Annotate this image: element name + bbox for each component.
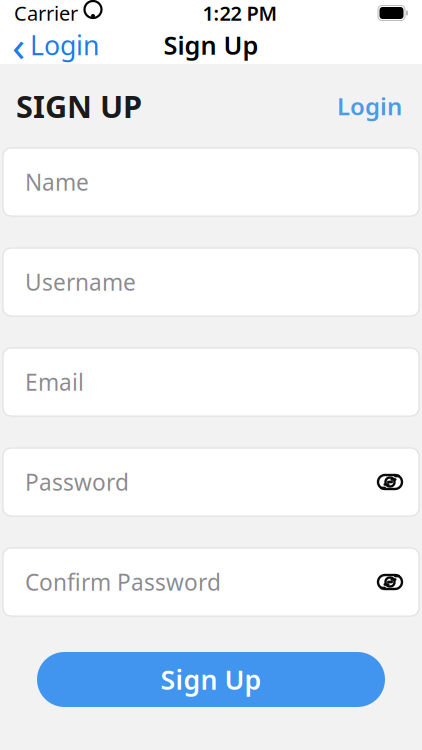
staticText: Login	[337, 90, 402, 122]
staticText: Password	[25, 467, 129, 497]
button[interactable]: Login	[333, 84, 406, 128]
button[interactable]: Show Confirm Password	[373, 565, 407, 599]
button[interactable]: ‹	[0, 13, 99, 77]
staticText: SIGN UP	[16, 86, 142, 126]
staticText: Carrier	[14, 0, 78, 26]
button[interactable]: Show Password	[373, 465, 407, 499]
staticText: ‹	[12, 17, 25, 73]
staticText: Sign Up	[163, 28, 258, 62]
staticText: Name	[25, 167, 89, 197]
staticText: Login	[30, 27, 99, 63]
staticText: Username	[25, 267, 136, 297]
button[interactable]: Sign Up	[37, 652, 385, 707]
staticText: Confirm Password	[25, 567, 221, 597]
staticText: Sign Up	[160, 662, 261, 697]
staticText: 1:22 PM	[202, 0, 277, 26]
staticText: Email	[25, 367, 84, 397]
